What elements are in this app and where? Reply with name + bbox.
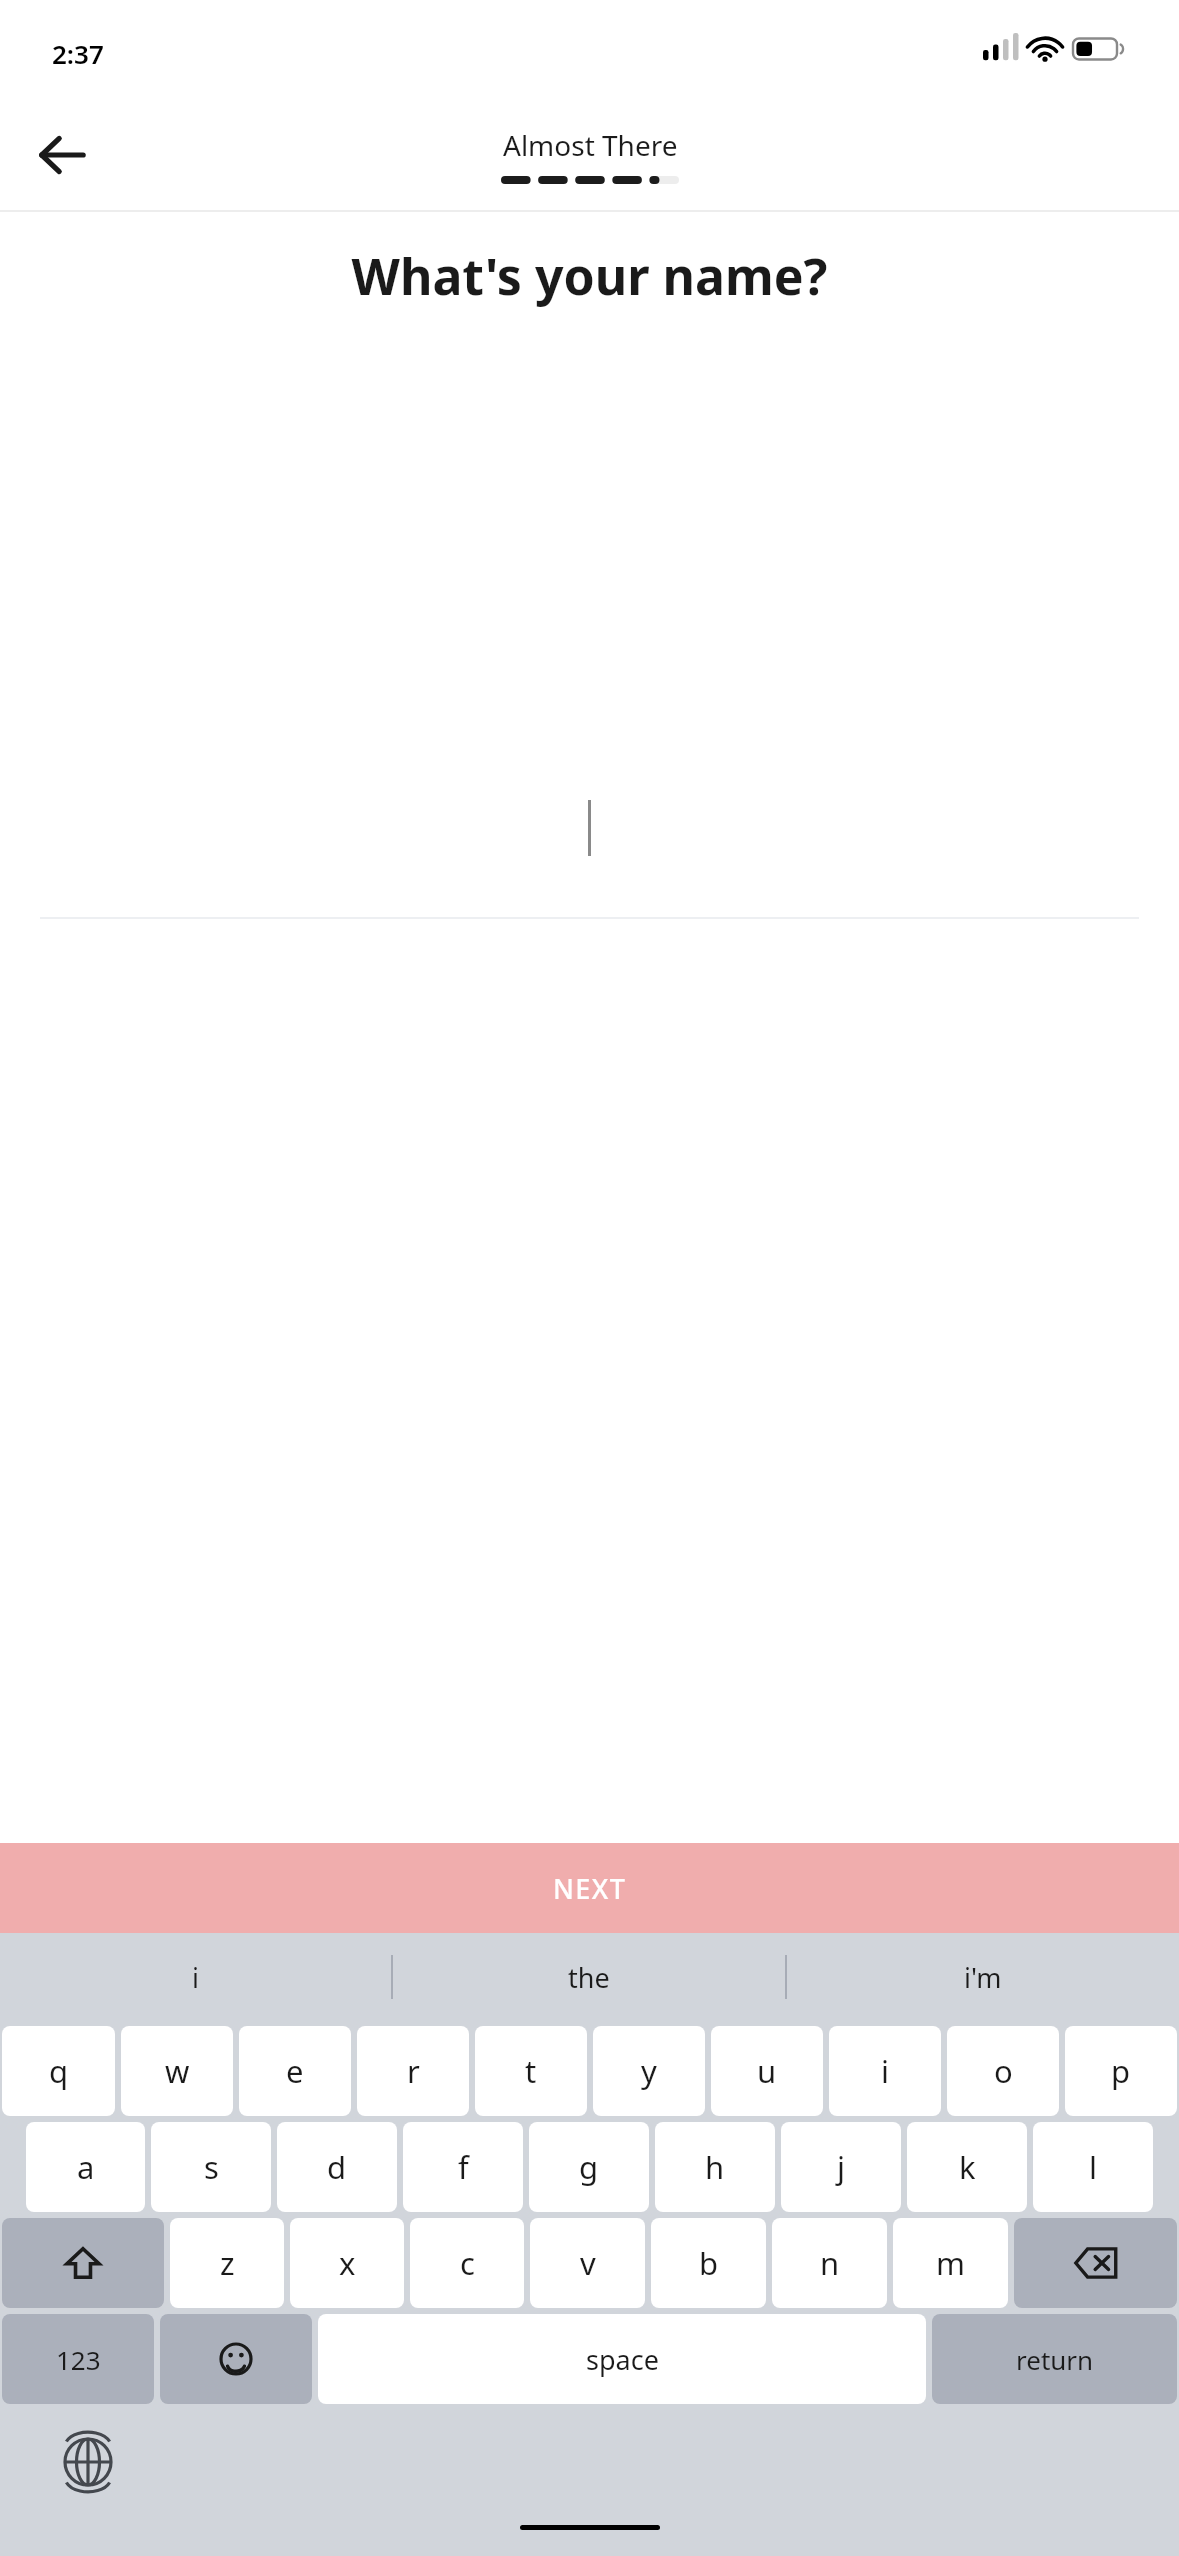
staticText: o [994, 2050, 1013, 2092]
button[interactable] [0, 797, 1179, 919]
staticText: r [407, 2050, 420, 2092]
staticText: i [881, 2050, 889, 2092]
staticText: 123 [56, 2342, 101, 2377]
staticText: What's your name? [24, 242, 1155, 310]
staticText: d [327, 2146, 347, 2188]
staticText: the [568, 1959, 610, 1996]
button[interactable]: NEXT [0, 1843, 1179, 1933]
staticText: NEXT [553, 1870, 627, 1907]
staticText: y [641, 2050, 657, 2092]
button[interactable]: s [151, 2122, 271, 2212]
button[interactable]: the [393, 1933, 785, 2021]
button[interactable]: g [529, 2122, 649, 2212]
staticText: c [460, 2242, 475, 2284]
button[interactable]: y [593, 2026, 705, 2116]
staticText: return [1016, 2342, 1094, 2377]
staticText: b [699, 2242, 719, 2284]
staticText: l [1089, 2146, 1097, 2188]
button[interactable]: w [121, 2026, 233, 2116]
staticText: z [220, 2242, 235, 2284]
button[interactable]: h [655, 2122, 775, 2212]
staticText: j [837, 2146, 845, 2188]
staticText: Almost There [503, 126, 678, 164]
button[interactable]: n [772, 2218, 887, 2308]
staticText: i [192, 1959, 199, 1996]
staticText: u [757, 2050, 777, 2092]
staticText: e [286, 2050, 304, 2092]
staticText: space [586, 2341, 659, 2378]
staticText: x [339, 2242, 356, 2284]
button[interactable]: a [26, 2122, 145, 2212]
staticText: i'm [964, 1959, 1002, 1996]
button[interactable]: m [893, 2218, 1008, 2308]
button[interactable]: Shift [2, 2218, 164, 2308]
button[interactable]: x [290, 2218, 404, 2308]
button[interactable]: Change keyboard language [52, 2426, 124, 2498]
button[interactable]: Emoji [160, 2314, 312, 2404]
button[interactable]: f [403, 2122, 523, 2212]
staticText: k [959, 2146, 976, 2188]
button[interactable]: 123 [2, 2314, 154, 2404]
staticText: w [165, 2050, 190, 2092]
button[interactable]: r [357, 2026, 469, 2116]
button[interactable]: Backspace [1014, 2218, 1177, 2308]
button[interactable]: e [239, 2026, 351, 2116]
button[interactable]: j [781, 2122, 901, 2212]
button[interactable]: z [170, 2218, 284, 2308]
staticText: f [458, 2146, 469, 2188]
staticText: a [77, 2146, 95, 2188]
staticText: g [579, 2146, 599, 2188]
button[interactable]: i'm [787, 1933, 1179, 2021]
button[interactable]: l [1033, 2122, 1153, 2212]
staticText: t [525, 2050, 537, 2092]
button[interactable]: t [475, 2026, 587, 2116]
staticText: s [204, 2146, 219, 2188]
button[interactable]: v [530, 2218, 645, 2308]
staticText: 2:37 [52, 36, 104, 71]
button[interactable]: space [318, 2314, 926, 2404]
button[interactable]: u [711, 2026, 823, 2116]
staticText: p [1111, 2050, 1131, 2092]
button[interactable]: return [932, 2314, 1177, 2404]
button[interactable]: b [651, 2218, 766, 2308]
button[interactable]: k [907, 2122, 1027, 2212]
button[interactable]: c [410, 2218, 524, 2308]
button[interactable]: i [829, 2026, 941, 2116]
staticText: q [49, 2050, 69, 2092]
staticText: m [936, 2242, 965, 2284]
button[interactable]: i [0, 1933, 391, 2021]
staticText: v [580, 2242, 596, 2284]
button[interactable]: d [277, 2122, 397, 2212]
button[interactable]: o [947, 2026, 1059, 2116]
button[interactable]: Back [22, 115, 102, 195]
button[interactable]: p [1065, 2026, 1177, 2116]
staticText: n [820, 2242, 840, 2284]
button[interactable]: q [2, 2026, 115, 2116]
staticText: h [705, 2146, 725, 2188]
